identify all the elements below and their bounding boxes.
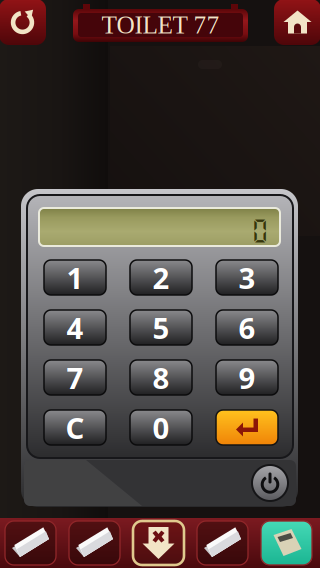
button[interactable]: 9 bbox=[216, 360, 278, 395]
staticText: 2 bbox=[152, 258, 169, 297]
button[interactable]: C bbox=[44, 410, 106, 445]
staticText: 5 bbox=[152, 308, 169, 347]
staticText: 0 bbox=[251, 215, 269, 245]
button[interactable]: 2 bbox=[130, 260, 192, 295]
button[interactable]: Paper bbox=[197, 521, 248, 565]
staticText: 9 bbox=[238, 358, 255, 397]
button[interactable]: Calculator bbox=[261, 521, 312, 565]
button[interactable]: Restart bbox=[0, 0, 46, 45]
staticText: 7 bbox=[66, 358, 83, 397]
button[interactable]: Enter bbox=[216, 410, 278, 445]
staticText: 3 bbox=[238, 258, 255, 297]
staticText: 4 bbox=[66, 308, 83, 347]
staticText: 8 bbox=[152, 358, 169, 397]
staticText: 6 bbox=[238, 308, 255, 347]
button[interactable]: 5 bbox=[130, 310, 192, 345]
button[interactable]: 1 bbox=[44, 260, 106, 295]
button[interactable]: Power bbox=[250, 463, 290, 503]
staticText: C bbox=[65, 408, 84, 447]
staticText: TOILET 77 bbox=[101, 11, 219, 39]
button[interactable]: Home bbox=[274, 0, 320, 45]
button[interactable]: 3 bbox=[216, 260, 278, 295]
staticText: 1 bbox=[66, 258, 83, 297]
button[interactable]: Paper bbox=[69, 521, 120, 565]
button[interactable]: 4 bbox=[44, 310, 106, 345]
staticText: 0 bbox=[152, 408, 169, 447]
button[interactable]: 7 bbox=[44, 360, 106, 395]
button[interactable]: Paper bbox=[5, 521, 56, 565]
button[interactable]: 6 bbox=[216, 310, 278, 345]
button[interactable]: 8 bbox=[130, 360, 192, 395]
button[interactable]: 0 bbox=[130, 410, 192, 445]
button[interactable]: Drop item bbox=[133, 521, 184, 565]
